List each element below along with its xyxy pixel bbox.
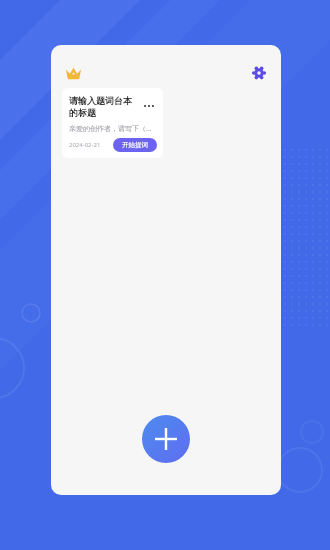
button[interactable]: More options (141, 98, 157, 114)
button[interactable]: Settings (249, 63, 269, 83)
button[interactable]: 开始提词 (113, 138, 157, 152)
staticText: 亲爱的创作者，请写下（... (69, 124, 152, 134)
staticText: 开始提词 (122, 141, 148, 149)
button[interactable]: Add new script (142, 415, 190, 463)
button[interactable]: VIP (63, 63, 83, 83)
staticText: 请输入题词台本 的标题 (69, 95, 141, 119)
button[interactable]: 请输入题词台本 的标题 (62, 88, 163, 158)
staticText: 2024-02-21 (69, 141, 101, 149)
